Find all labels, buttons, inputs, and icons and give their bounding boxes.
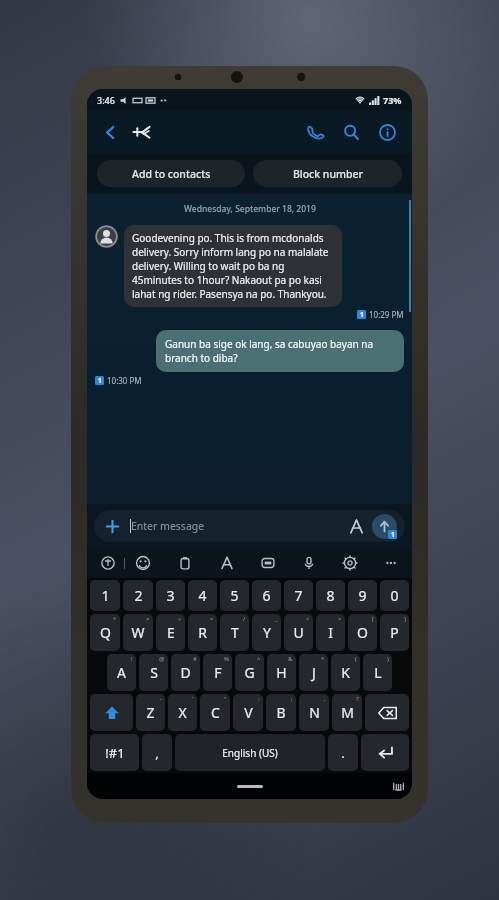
staticText: D — [180, 663, 191, 682]
staticText: Goodevening po. This is from mcdonalds d… — [132, 231, 334, 301]
button[interactable]: ^ — [235, 654, 264, 691]
staticText: Wednesday, September 18, 2019 — [184, 203, 316, 215]
button[interactable]: > — [316, 614, 345, 651]
staticText: 73% — [383, 94, 402, 106]
button[interactable]: Backspace — [365, 694, 409, 731]
button[interactable]: ] — [380, 614, 409, 651]
staticText: B — [276, 703, 286, 722]
staticText: H — [276, 663, 287, 682]
staticText: 9 — [358, 586, 367, 605]
button[interactable]: More options — [380, 552, 402, 574]
button[interactable]: / — [220, 614, 249, 651]
button[interactable]: 2 — [123, 580, 153, 611]
staticText: 6 — [262, 586, 271, 605]
button[interactable]: Stickers — [216, 552, 238, 574]
staticText: _ — [275, 615, 278, 623]
button[interactable]: English (US) — [175, 734, 325, 771]
button[interactable]: Call — [300, 117, 330, 147]
staticText: 4 — [198, 586, 207, 605]
button[interactable]: Add to contacts — [97, 160, 245, 187]
button[interactable]: ' — [168, 694, 197, 731]
button[interactable]: ? — [332, 694, 362, 731]
button[interactable]: + — [90, 614, 120, 651]
button[interactable]: 4 — [188, 580, 217, 611]
button[interactable]: ! — [107, 654, 136, 691]
button[interactable]: , — [142, 734, 172, 771]
staticText: / — [243, 615, 246, 623]
button[interactable]: 8 — [316, 580, 345, 611]
staticText: V — [244, 703, 253, 722]
button[interactable]: 7 — [284, 580, 313, 611]
staticText: K — [341, 663, 350, 682]
staticText: 5 — [230, 586, 239, 605]
button[interactable]: Emoji — [132, 552, 154, 574]
button[interactable]: 1 — [90, 580, 120, 611]
button[interactable]: 0 — [380, 580, 409, 611]
button[interactable]: = — [188, 614, 217, 651]
button[interactable]: # — [171, 654, 200, 691]
staticText: ] — [404, 615, 406, 623]
staticText: 1 — [101, 586, 110, 605]
button[interactable]: !#1 — [90, 734, 139, 771]
button[interactable]: Clipboard — [174, 552, 196, 574]
button[interactable]: ( — [331, 654, 360, 691]
staticText: 3 — [166, 586, 175, 605]
button[interactable]: < — [284, 614, 313, 651]
staticText: Ganun ba sige ok lang, sa cabuyao bayan … — [165, 337, 395, 365]
button[interactable]: Block number — [253, 160, 402, 187]
button[interactable]: Shift — [90, 694, 133, 731]
staticText: J — [312, 663, 316, 682]
staticText: English (US) — [222, 746, 278, 760]
button[interactable]: GIF — [257, 552, 279, 574]
button[interactable]: ; — [266, 694, 296, 731]
staticText: . — [341, 744, 345, 762]
button[interactable]: : — [233, 694, 263, 731]
staticText: ) — [387, 655, 389, 663]
button[interactable]: Settings — [339, 552, 361, 574]
button[interactable]: _ — [252, 614, 281, 651]
button[interactable]: Details — [372, 117, 402, 147]
staticText: 10:29 PM — [369, 309, 404, 320]
button[interactable]: " — [200, 694, 230, 731]
staticText: " — [224, 695, 227, 703]
staticText: > — [338, 615, 342, 623]
staticText: ^ — [257, 655, 261, 663]
staticText: N — [309, 703, 320, 722]
button[interactable]: Stickers — [345, 515, 367, 537]
staticText: ; — [291, 695, 293, 703]
button[interactable]: % — [203, 654, 232, 691]
button[interactable]: Search — [336, 117, 366, 147]
staticText: F — [214, 663, 222, 682]
staticText: 1 — [360, 310, 364, 319]
staticText: T — [231, 623, 239, 642]
button[interactable]: Back — [97, 119, 123, 145]
button[interactable]: Ganun ba sige ok lang, sa cabuyao bayan … — [156, 330, 404, 372]
button[interactable]: & — [267, 654, 296, 691]
button[interactable]: Send — [372, 514, 397, 539]
staticText: U — [293, 623, 304, 642]
button[interactable]: , — [299, 694, 329, 731]
button[interactable]: Goodevening po. This is from mcdonalds d… — [124, 225, 342, 307]
button[interactable]: × — [123, 614, 153, 651]
button[interactable]: 5 — [220, 580, 249, 611]
staticText: < — [306, 615, 310, 623]
button[interactable]: ÷ — [156, 614, 185, 651]
button[interactable]: 6 — [252, 580, 281, 611]
button[interactable]: * — [299, 654, 328, 691]
button[interactable]: Enter — [361, 734, 409, 771]
button[interactable]: 3 — [156, 580, 185, 611]
button[interactable]: 9 — [348, 580, 377, 611]
staticText: ÷ — [178, 615, 182, 623]
button[interactable]: Clipboard history — [97, 552, 119, 574]
button[interactable]: [ — [348, 614, 377, 651]
staticText: # — [193, 655, 197, 663]
button[interactable]: @ — [139, 654, 168, 691]
staticText: 3:46 — [97, 94, 115, 106]
button[interactable]: - — [136, 694, 165, 731]
button[interactable]: . — [328, 734, 358, 771]
button[interactable]: Voice input — [298, 552, 320, 574]
button[interactable]: Add attachment — [102, 516, 122, 536]
staticText: 1 — [98, 376, 102, 385]
staticText: ! — [131, 655, 133, 663]
button[interactable]: ) — [363, 654, 392, 691]
